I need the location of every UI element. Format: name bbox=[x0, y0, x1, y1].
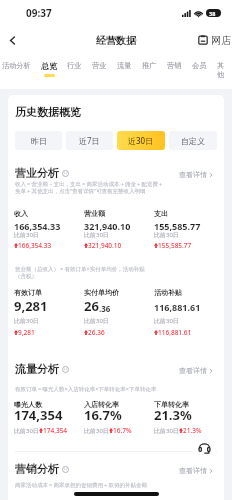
button[interactable]: 入店转化率 bbox=[84, 400, 119, 409]
staticText: 查看详情 bbox=[179, 366, 207, 375]
staticText: 经营数据 bbox=[96, 34, 136, 47]
staticText: 26 bbox=[84, 297, 99, 315]
staticText: 26.36 bbox=[88, 328, 105, 337]
staticText: 入店转化率 bbox=[84, 400, 119, 409]
button[interactable]: 收入 bbox=[14, 209, 28, 218]
button[interactable]: 实付单均价 bbox=[84, 288, 119, 297]
button[interactable]: 活动补贴 bbox=[154, 288, 182, 297]
staticText: 155,585.77 bbox=[154, 220, 201, 232]
staticText: 历史数据概览 bbox=[15, 105, 81, 119]
staticText: 自定义 bbox=[181, 136, 205, 146]
staticText: 营业额 bbox=[84, 209, 105, 218]
button[interactable]: 自定义 bbox=[169, 131, 217, 150]
staticText: 比前30日 bbox=[14, 317, 39, 325]
button[interactable]: 昨日 bbox=[15, 131, 62, 150]
staticText: 21.3% bbox=[183, 426, 202, 435]
button[interactable]: 营业分析 bbox=[15, 166, 59, 180]
button[interactable]: 行业 bbox=[62, 57, 87, 79]
button[interactable]: 近7日 bbox=[66, 131, 113, 150]
staticText: 支出 bbox=[154, 209, 168, 218]
button[interactable]: 流量 bbox=[112, 57, 137, 79]
button[interactable]: 查看详情 bbox=[179, 366, 213, 375]
staticText: 比前30日 bbox=[84, 427, 109, 435]
staticText: 116,881.61 bbox=[154, 301, 201, 313]
staticText: 38 bbox=[209, 10, 216, 17]
staticText: 会员 bbox=[192, 61, 207, 70]
button[interactable]: 有效订单 bbox=[14, 288, 42, 297]
staticText: 比前30日 bbox=[84, 317, 109, 325]
button[interactable]: 历史数据概览 bbox=[15, 105, 81, 119]
staticText: 174,354 bbox=[14, 406, 63, 424]
staticText: 下单转化率 bbox=[154, 400, 189, 409]
staticText: 营业 bbox=[92, 61, 107, 70]
staticText: 155,585.77 bbox=[158, 241, 192, 250]
staticText: 比前30日 bbox=[154, 427, 179, 435]
staticText: 9,281 bbox=[18, 328, 35, 337]
staticText: 查看详情 bbox=[179, 466, 207, 475]
staticText: 活动补贴 bbox=[154, 288, 182, 297]
button[interactable]: 营业 bbox=[87, 57, 112, 79]
staticText: 166,354.33 bbox=[14, 220, 61, 232]
button[interactable]: Back bbox=[0, 28, 24, 52]
staticText: 比前30日 bbox=[14, 231, 39, 239]
staticText: 近7日 bbox=[79, 135, 100, 146]
staticText: 昨日 bbox=[31, 136, 47, 146]
button[interactable]: 会员 bbox=[187, 57, 212, 79]
button[interactable]: 流量分析 bbox=[15, 362, 59, 376]
staticText: 有效订单＝曝光人数×入店转化率×下单转化率×下单转化率 bbox=[15, 385, 157, 393]
staticText: 营业额（总收入）＝有效订单×实付单均价，活动补贴 （含税） bbox=[15, 265, 145, 280]
staticText: 166,354.33 bbox=[18, 241, 52, 250]
button[interactable]: 活动分析 bbox=[0, 57, 36, 79]
staticText: 推广 bbox=[142, 61, 157, 70]
staticText: 行业 bbox=[67, 61, 82, 70]
staticText: 收入＝营业额－支出，支出＝商家活动成本＋佣金＋配送费＋ 免单＋其他支出，点击“查… bbox=[15, 181, 164, 195]
staticText: 321,940.10 bbox=[88, 241, 122, 250]
button[interactable]: 支出 bbox=[154, 209, 168, 218]
button[interactable]: 其他 bbox=[212, 57, 229, 79]
staticText: 营销 bbox=[167, 61, 182, 70]
staticText: 其他 bbox=[217, 61, 224, 79]
staticText: 16.7% bbox=[113, 426, 132, 435]
button[interactable]: 曝光人数 bbox=[14, 400, 42, 409]
button[interactable]: 查看详情 bbox=[179, 170, 213, 179]
button[interactable]: Customer service bbox=[192, 436, 216, 460]
button[interactable]: 营销分析 bbox=[15, 462, 59, 476]
staticText: 比前30日 bbox=[154, 231, 179, 239]
button[interactable]: 推广 bbox=[137, 57, 162, 79]
staticText: 有效订单 bbox=[14, 288, 42, 297]
button[interactable]: Report bbox=[195, 32, 211, 48]
staticText: 16.7% bbox=[84, 406, 122, 424]
staticText: 近30日 bbox=[128, 135, 154, 146]
staticText: 活动分析 bbox=[2, 61, 31, 70]
staticText: .36 bbox=[99, 303, 111, 314]
button[interactable]: 查看详情 bbox=[179, 466, 213, 475]
staticText: 商家活动成本＝商家承担的促销费用＋取得的补贴金额 bbox=[15, 482, 147, 489]
staticText: 实付单均价 bbox=[84, 288, 119, 297]
staticText: 曝光人数 bbox=[14, 400, 42, 409]
button[interactable]: 网店 bbox=[211, 34, 232, 47]
button[interactable]: 近30日 bbox=[117, 131, 165, 150]
button[interactable]: 总览 bbox=[36, 57, 62, 79]
staticText: 总览 bbox=[41, 61, 57, 71]
button[interactable]: 营销 bbox=[162, 57, 187, 79]
button[interactable]: 下单转化率 bbox=[154, 400, 189, 409]
staticText: 174,354 bbox=[43, 426, 68, 435]
staticText: 流量 bbox=[117, 61, 132, 70]
staticText: 比前30日 bbox=[154, 317, 179, 325]
staticText: 21.3% bbox=[154, 406, 192, 424]
staticText: 321,940.10 bbox=[84, 220, 131, 232]
staticText: 比前30日 bbox=[14, 427, 39, 435]
staticText: 查看详情 bbox=[179, 170, 207, 179]
staticText: 09:37 bbox=[26, 6, 52, 20]
staticText: 收入 bbox=[14, 209, 28, 218]
staticText: 116,881.61 bbox=[158, 328, 192, 337]
staticText: 比前30日 bbox=[84, 231, 109, 239]
staticText: 9,281 bbox=[14, 297, 48, 315]
button[interactable]: 营业额 bbox=[84, 209, 105, 218]
